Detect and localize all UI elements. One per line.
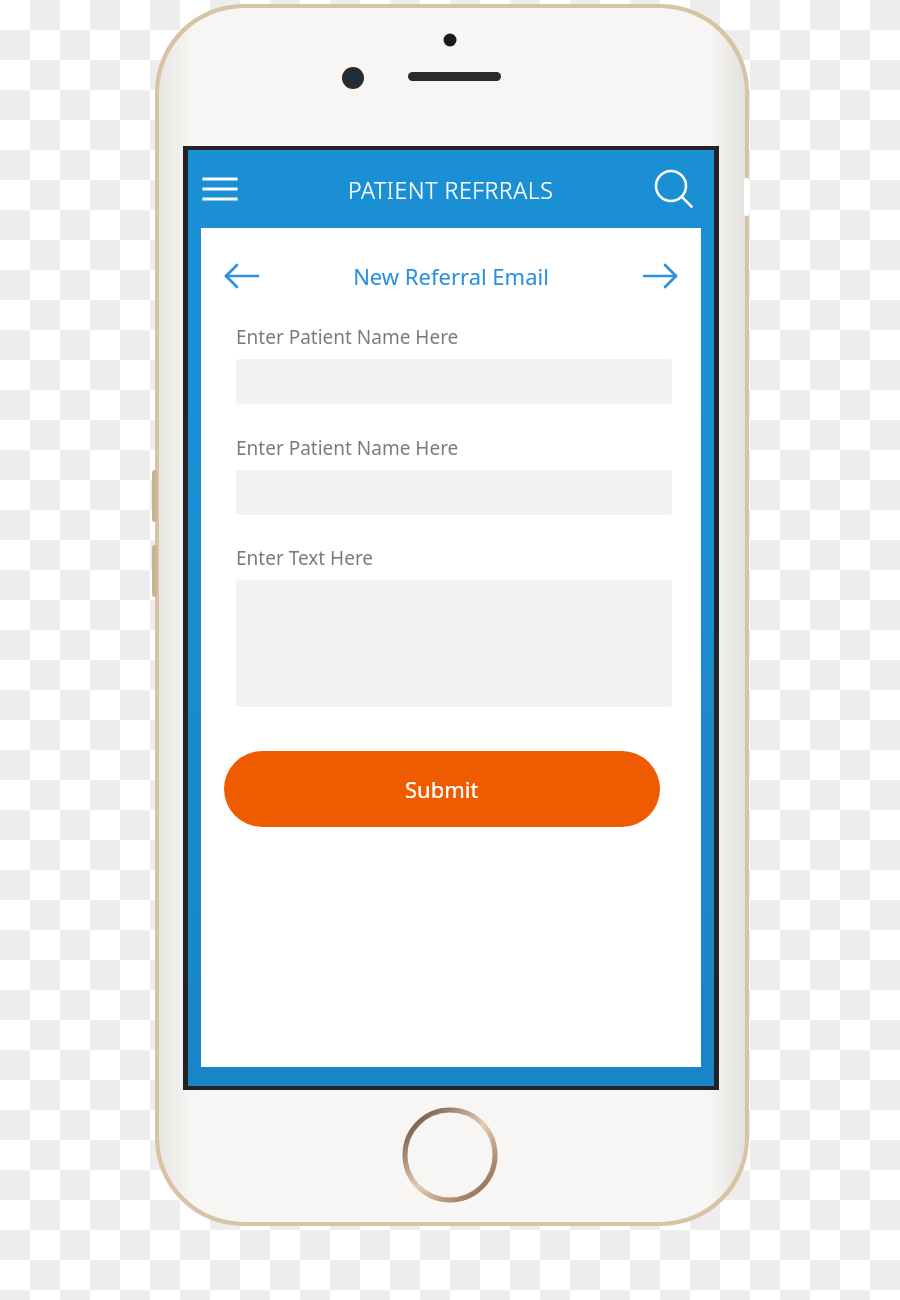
staticText: Submit (405, 774, 479, 804)
button[interactable]: Previous (213, 248, 269, 304)
staticText: Enter Patient Name Here (236, 435, 459, 461)
staticText: Enter Text Here (236, 545, 374, 571)
button[interactable]: Search (648, 163, 700, 215)
button[interactable]: Submit (224, 751, 660, 827)
button[interactable]: Next (633, 248, 689, 304)
button[interactable]: Menu (194, 163, 246, 215)
staticText: PATIENT REFRRALS (348, 174, 554, 205)
staticText: Enter Patient Name Here (236, 324, 459, 350)
staticText: New Referral Email (353, 261, 549, 291)
